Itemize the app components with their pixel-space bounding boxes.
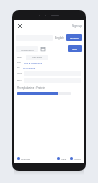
staticText: Phenylalanine : Protein xyxy=(17,86,46,90)
button[interactable]: 200 xyxy=(14,60,84,65)
staticText: English xyxy=(55,36,64,40)
staticText: Rest xyxy=(17,79,22,82)
button[interactable]: Settings xyxy=(17,157,31,160)
staticText: 25 g Bread xyxy=(23,66,36,69)
button[interactable]: 25 xyxy=(14,65,84,70)
staticText: About xyxy=(74,157,81,160)
staticText: 200 g Vegetable xyxy=(24,61,43,64)
button[interactable]: SEARCH xyxy=(66,34,82,41)
button[interactable]: Last used xyxy=(26,55,48,60)
staticText: Item xyxy=(17,56,22,59)
staticText: SEARCH xyxy=(70,36,79,39)
staticText: Total xyxy=(17,72,22,75)
button[interactable]: Help xyxy=(57,157,67,160)
staticText: Help xyxy=(61,157,67,160)
staticText: ADD xyxy=(72,47,78,50)
button[interactable]: Pick date xyxy=(40,46,45,51)
staticText: 200 xyxy=(17,61,21,64)
button[interactable]: Sign up xyxy=(72,24,82,28)
staticText: Last used xyxy=(32,56,42,59)
staticText: 25 xyxy=(17,66,20,69)
button[interactable]: 16/02/2019 xyxy=(16,46,38,52)
button[interactable]: Close xyxy=(16,22,24,30)
staticText: Settings xyxy=(21,157,31,160)
staticText: Sign up xyxy=(72,24,82,28)
button[interactable]: ADD xyxy=(68,45,82,52)
button[interactable]: About xyxy=(70,157,81,160)
staticText: 16/02/2019 xyxy=(21,48,34,51)
